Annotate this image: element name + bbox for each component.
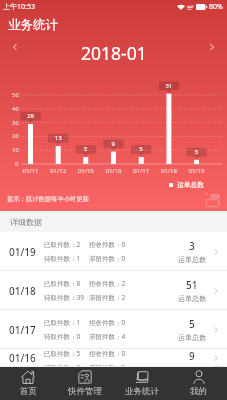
staticText: 已取件数：5	[44, 349, 81, 358]
staticText: 拒收件数：0	[89, 349, 126, 358]
staticText: 3	[189, 239, 195, 253]
staticText: 80%	[209, 2, 223, 12]
staticText: 01/18	[9, 284, 36, 298]
staticText: 01/16	[9, 351, 36, 365]
staticText: 滞留件数：4	[89, 332, 126, 341]
button[interactable]: 快件管理	[56, 367, 113, 400]
staticText: 详细数据	[10, 217, 42, 227]
staticText: 5	[189, 317, 195, 331]
staticText: 01/19	[9, 245, 36, 259]
staticText: 运单总数	[178, 365, 206, 367]
staticText: 业务统计	[8, 17, 58, 33]
button[interactable]: 01/19	[0, 232, 227, 271]
button[interactable]: 业务统计	[113, 367, 170, 400]
staticText: 运单总数	[178, 333, 206, 342]
staticText: 提示：统计数据每半小时更新	[7, 195, 89, 203]
staticText: 拒收件数：0	[89, 318, 126, 327]
staticText: 待取件数：0	[44, 332, 81, 341]
button[interactable]: 我的	[170, 367, 227, 400]
button[interactable]: Next month	[197, 32, 227, 62]
staticText: 滞留件数：0	[89, 363, 126, 367]
staticText: 快件管理	[68, 386, 102, 397]
staticText: 已取件数：2	[44, 240, 81, 249]
staticText: 9	[189, 349, 195, 363]
staticText: 已取件数：1	[44, 318, 81, 327]
staticText: 待取件数：39	[44, 293, 84, 302]
staticText: 业务统计	[125, 386, 159, 397]
button[interactable]: Previous month	[0, 32, 30, 62]
staticText: 待取件数：1	[44, 254, 81, 263]
staticText: 拒收件数：2	[89, 279, 126, 288]
staticText: 已取件数：8	[44, 279, 81, 288]
staticText: 待取件数：0	[44, 363, 81, 367]
staticText: 运单总数	[178, 294, 206, 303]
button[interactable]: 首页	[0, 367, 56, 400]
staticText: 51	[186, 278, 198, 292]
staticText: 首页	[20, 386, 37, 397]
staticText: 滞留件数：2	[89, 293, 126, 302]
staticText: 运单总数	[178, 255, 206, 264]
button[interactable]: 01/16	[0, 349, 227, 367]
button[interactable]: 01/18	[0, 271, 227, 310]
staticText: 上午10:53	[3, 2, 35, 12]
staticText: 运单总数	[177, 180, 205, 189]
staticText: 我的	[190, 386, 207, 397]
button[interactable]: 01/17	[0, 310, 227, 349]
staticText: 拒收件数：0	[89, 240, 126, 249]
staticText: 01/17	[9, 323, 36, 337]
staticText: 滞留件数：0	[89, 254, 126, 263]
staticText: 2018-01	[81, 41, 147, 65]
